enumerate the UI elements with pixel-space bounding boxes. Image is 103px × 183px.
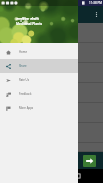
button[interactable]: Share xyxy=(0,59,78,73)
staticText: Rate Us xyxy=(19,78,30,82)
button[interactable] xyxy=(0,63,103,83)
staticText: More Apps xyxy=(19,106,34,110)
button[interactable]: More Apps xyxy=(0,101,78,115)
staticText: Feedback xyxy=(19,92,32,96)
button[interactable]: Feedback xyxy=(0,87,78,101)
button[interactable] xyxy=(0,123,103,143)
staticText: Medicinal Plants xyxy=(16,22,43,26)
button[interactable]: Recent apps xyxy=(72,170,84,182)
button[interactable]: Home xyxy=(0,45,78,59)
staticText: आयुर्वेदिक औषधि xyxy=(16,17,39,21)
button[interactable] xyxy=(0,83,103,103)
button[interactable]: Rate Us xyxy=(0,73,78,87)
button[interactable] xyxy=(0,143,103,152)
button[interactable] xyxy=(0,23,103,43)
staticText: 11:38 PM xyxy=(89,1,102,5)
button[interactable]: More options xyxy=(92,10,101,19)
button[interactable] xyxy=(0,43,103,63)
staticText: Share xyxy=(19,64,27,68)
button[interactable]: Next xyxy=(83,155,96,167)
staticText: Home xyxy=(19,50,27,54)
button[interactable] xyxy=(0,103,103,123)
